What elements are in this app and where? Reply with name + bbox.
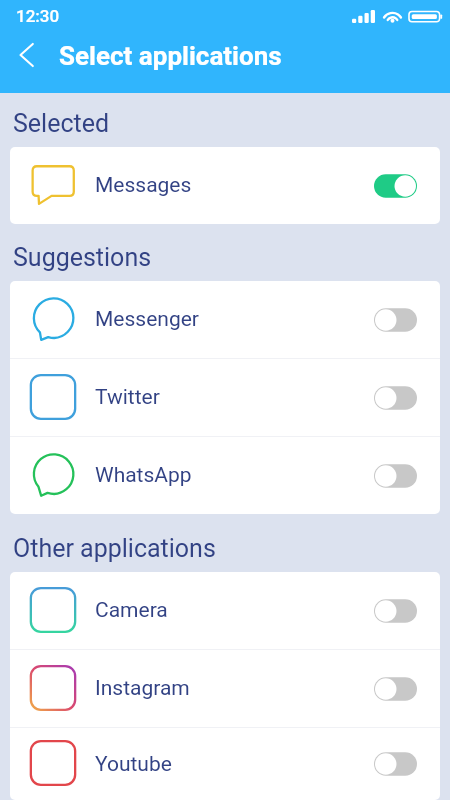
button[interactable]: Disabled, toggle on xyxy=(374,677,417,701)
button[interactable]: Messages xyxy=(10,147,440,224)
button[interactable]: Disabled, toggle on xyxy=(374,752,417,776)
staticText: Suggestions xyxy=(13,243,152,272)
button[interactable]: Messenger xyxy=(10,281,440,358)
button[interactable]: Disabled, toggle on xyxy=(374,308,417,332)
staticText: Selected xyxy=(13,109,110,138)
button[interactable]: Enabled, toggle off xyxy=(374,174,417,198)
staticText: Instagram xyxy=(95,676,190,701)
staticText: WhatsApp xyxy=(95,463,192,488)
button[interactable]: Youtube xyxy=(10,728,440,800)
button[interactable]: Disabled, toggle on xyxy=(374,386,417,410)
staticText: Other applications xyxy=(13,534,216,563)
staticText: Messenger xyxy=(95,307,199,332)
button[interactable]: Instagram xyxy=(10,650,440,727)
staticText: Twitter xyxy=(95,385,160,410)
staticText: Messages xyxy=(95,173,192,198)
staticText: Camera xyxy=(95,598,168,623)
staticText: 12:30 xyxy=(16,6,60,26)
staticText: Select applications xyxy=(59,41,282,71)
button[interactable]: Twitter xyxy=(10,359,440,436)
button[interactable]: Disabled, toggle on xyxy=(374,599,417,623)
staticText: Youtube xyxy=(95,752,172,777)
button[interactable]: Back xyxy=(0,40,46,86)
button[interactable]: WhatsApp xyxy=(10,437,440,514)
button[interactable]: Disabled, toggle on xyxy=(374,464,417,488)
button[interactable]: Camera xyxy=(10,572,440,649)
